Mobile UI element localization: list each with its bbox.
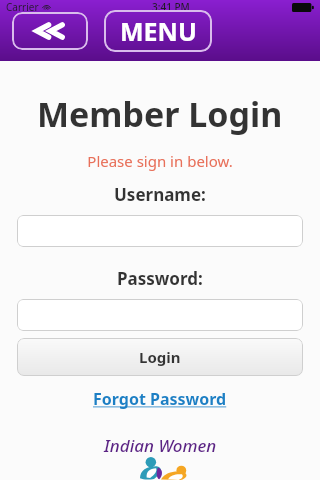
button[interactable]: MENU bbox=[104, 10, 212, 52]
button[interactable]: Forgot Password bbox=[87, 386, 233, 412]
button[interactable] bbox=[17, 299, 303, 331]
button[interactable]: Back bbox=[12, 12, 88, 50]
staticText: Member Login bbox=[37, 91, 283, 137]
staticText: Forgot Password bbox=[93, 388, 227, 410]
staticText: Please sign in below. bbox=[87, 151, 233, 171]
button[interactable] bbox=[17, 215, 303, 247]
staticText: MENU bbox=[120, 14, 197, 48]
staticText: 3:41 PM bbox=[152, 0, 190, 14]
button[interactable]: Login bbox=[17, 338, 303, 376]
staticText: Username: bbox=[114, 183, 206, 206]
staticText: Password: bbox=[117, 267, 203, 290]
staticText: Indian Women bbox=[104, 434, 217, 457]
staticText: Carrier bbox=[6, 0, 39, 14]
staticText: Login bbox=[139, 347, 181, 367]
